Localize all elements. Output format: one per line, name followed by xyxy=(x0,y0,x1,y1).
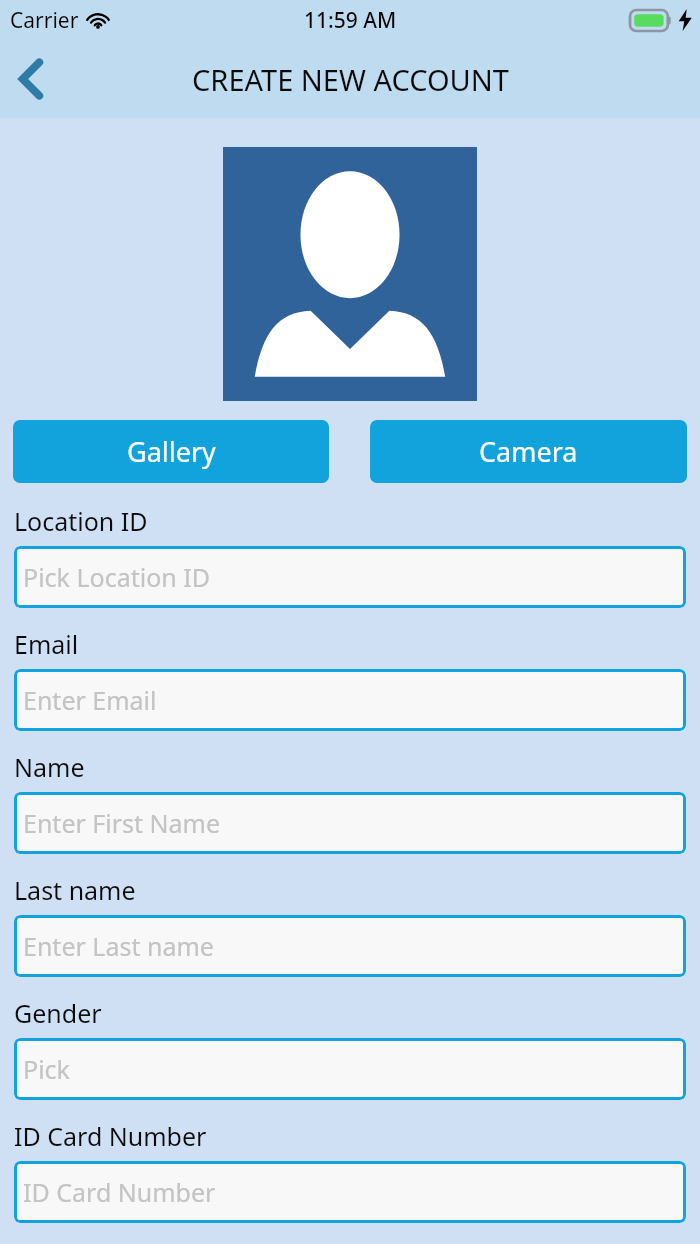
staticText: Email xyxy=(14,627,79,661)
button[interactable]: ID Card Number xyxy=(14,1161,686,1223)
staticText: Location ID xyxy=(14,504,148,538)
button[interactable]: Profile photo xyxy=(223,147,477,401)
staticText: Pick Location ID xyxy=(23,560,210,594)
button[interactable]: Enter First Name xyxy=(14,792,686,854)
button[interactable]: Enter Email xyxy=(14,669,686,731)
staticText: Last name xyxy=(14,873,136,907)
staticText: ID Card Number xyxy=(23,1175,216,1209)
button[interactable]: Pick Location ID xyxy=(14,546,686,608)
staticText: Gallery xyxy=(127,433,216,470)
staticText: Gender xyxy=(14,996,102,1030)
staticText: Enter Last name xyxy=(23,929,214,963)
staticText: Carrier xyxy=(10,6,79,35)
staticText: 11:59 AM xyxy=(304,6,397,35)
staticText: ID Card Number xyxy=(14,1119,207,1153)
staticText: Enter First Name xyxy=(23,806,221,840)
button[interactable]: Gallery xyxy=(13,420,329,483)
button[interactable]: Pick xyxy=(14,1038,686,1100)
button[interactable]: Camera xyxy=(370,420,687,483)
staticText: Enter Email xyxy=(23,683,157,717)
staticText: Name xyxy=(14,750,85,784)
button[interactable]: Back xyxy=(0,48,62,110)
staticText: Camera xyxy=(479,433,578,470)
staticText: Pick xyxy=(23,1052,70,1086)
staticText: CREATE NEW ACCOUNT xyxy=(192,60,509,99)
button[interactable]: Enter Last name xyxy=(14,915,686,977)
